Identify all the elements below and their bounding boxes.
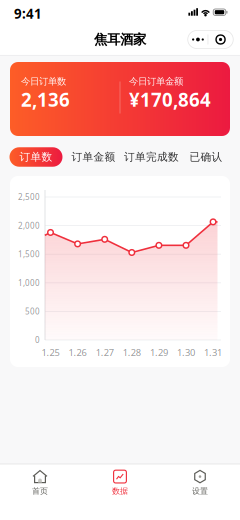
button[interactable]: 订单数 [9, 147, 62, 167]
staticText: 1.25 [41, 346, 59, 359]
button[interactable]: 首页 [0, 460, 80, 506]
staticText: 订单金额 [71, 150, 115, 163]
staticText: 500 [25, 306, 40, 317]
staticText: 0 [35, 335, 40, 345]
button[interactable]: 已确认 [189, 150, 222, 163]
button[interactable]: 订单完成数 [124, 150, 179, 163]
staticText: 2,500 [18, 192, 40, 202]
staticText: 1.31 [204, 346, 222, 359]
staticText: 设置 [192, 486, 208, 496]
staticText: 数据 [112, 486, 128, 496]
staticText: 今日订单数 [21, 76, 66, 87]
button[interactable]: 数据 [80, 460, 160, 506]
staticText: 今日订单金额 [129, 76, 183, 87]
staticText: 2,136 [21, 87, 70, 112]
button[interactable]: 更多 [188, 30, 233, 48]
staticText: 已确认 [189, 150, 222, 163]
staticText: ¥170,864 [129, 87, 211, 112]
staticText: 1,500 [18, 249, 40, 259]
staticText: 订单数 [19, 150, 52, 163]
staticText: 1.28 [123, 346, 141, 359]
staticText: 首页 [32, 486, 48, 496]
staticText: 1.26 [69, 346, 87, 359]
staticText: 1.30 [177, 346, 195, 359]
staticText: 9:41 [14, 5, 42, 22]
staticText: 1,000 [18, 277, 40, 288]
staticText: 1.27 [96, 346, 114, 359]
button[interactable]: 订单金额 [71, 150, 115, 163]
staticText: 2,000 [18, 220, 40, 231]
staticText: 1.29 [150, 346, 168, 359]
staticText: 订单完成数 [124, 150, 179, 163]
button[interactable]: 设置 [160, 460, 240, 506]
staticText: 焦耳酒家 [94, 31, 146, 48]
